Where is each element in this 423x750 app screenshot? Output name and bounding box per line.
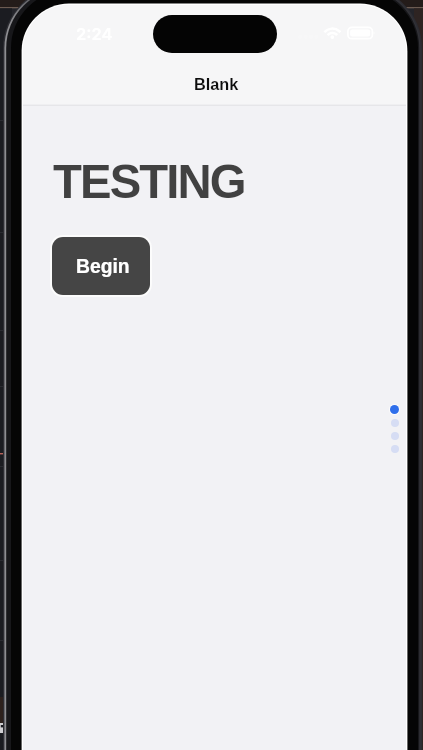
staticText: TESTING [53, 155, 245, 208]
button[interactable]: Begin [52, 237, 150, 295]
button[interactable] [389, 404, 400, 415]
button[interactable] [391, 432, 399, 440]
other: Signal, Wi-Fi and battery status [295, 24, 377, 44]
staticText: Blank [194, 75, 239, 93]
button[interactable] [391, 445, 399, 453]
other: Page indicator [389, 404, 400, 453]
staticText: Begin [76, 256, 130, 278]
staticText: 2:24 [76, 24, 113, 44]
button[interactable] [391, 419, 399, 427]
